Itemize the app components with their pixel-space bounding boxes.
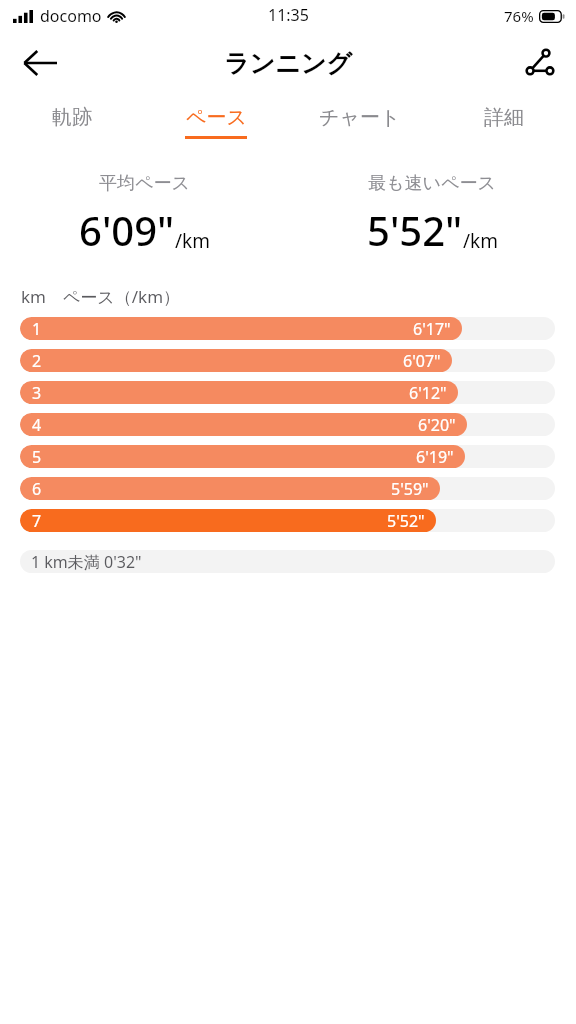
staticText: 5'59" [391,478,429,500]
button[interactable]: ペース [144,94,288,150]
staticText: 7 [32,510,42,532]
staticText: 6'20" [418,414,456,436]
staticText: 6'07" [403,350,441,372]
staticText: 4 [32,414,42,436]
staticText: 1 [32,318,42,340]
staticText: /km [175,228,210,254]
staticText: 1 km未満 0'32" [31,551,142,573]
button[interactable]: 1 [20,317,555,340]
staticText: 軌跡 [52,105,92,130]
button[interactable]: 4 [20,413,555,436]
button[interactable]: 軌跡 [0,94,144,150]
staticText: 3 [32,382,42,404]
staticText: km ペース（/km） [21,285,181,308]
staticText: 平均ペース [99,172,190,195]
staticText: 2 [32,350,42,372]
button[interactable]: 詳細 [432,94,576,150]
staticText: 6'19" [416,446,454,468]
staticText: チャート [319,105,401,130]
staticText: 5 [32,446,42,468]
staticText: 5'52" [367,203,463,257]
button[interactable]: 7 [20,509,555,532]
staticText: 11:35 [268,4,309,26]
staticText: 最も速いペース [368,172,496,195]
staticText: 6 [32,478,42,500]
staticText: 76% [504,6,534,26]
staticText: 6'17" [413,318,451,340]
staticText: 6'12" [409,382,447,404]
button[interactable]: 5 [20,445,555,468]
button[interactable]: チャート [288,94,432,150]
staticText: 詳細 [484,105,524,130]
button[interactable]: 2 [20,349,555,372]
staticText: docomo [40,5,102,27]
staticText: ランニング [224,48,352,79]
button[interactable]: Share [514,37,566,89]
button[interactable]: 6 [20,477,555,500]
staticText: 5'52" [387,510,425,532]
button[interactable]: Back [12,35,68,91]
staticText: ペース [186,105,247,130]
staticText: 6'09" [79,203,175,257]
staticText: /km [463,228,498,254]
button[interactable]: 3 [20,381,555,404]
button[interactable]: 1 km未満 0'32" [20,550,555,573]
